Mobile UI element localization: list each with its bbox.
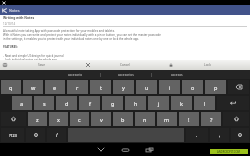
button[interactable]: v [91,112,111,126]
button[interactable]: accesorios [101,70,151,79]
staticText: ANDROIDPIT.COM [217,150,241,154]
staticText: ? [210,116,213,123]
staticText: With it Notes you can write and protect … [3,33,161,37]
staticText: s [43,100,46,107]
staticText: b [121,116,125,123]
button[interactable]: key [231,128,249,142]
button[interactable]: Hide keyboard [89,143,113,156]
staticText: i [169,84,171,91]
staticText: , [219,132,221,138]
staticText: h [134,100,138,107]
staticText: z [36,116,39,123]
button[interactable]: Recent apps [137,143,161,156]
button[interactable]: w [23,80,43,94]
staticText: t [100,84,102,91]
button[interactable]: c [70,112,89,126]
staticText: c [78,116,81,123]
button[interactable]: key [26,128,45,142]
button[interactable]: k [171,96,192,110]
staticText: f [89,100,91,107]
staticText: r [76,84,79,91]
button[interactable]: y [113,80,134,94]
button[interactable]: Cancel [83,60,166,70]
button[interactable]: p [205,80,226,94]
button[interactable]: key [217,96,249,110]
button[interactable]: . [186,128,208,142]
button[interactable]: e [45,80,65,94]
staticText: accesos [171,73,183,77]
staticText: Notes [9,8,20,13]
staticText: accesorio [68,73,83,77]
staticText: k [180,100,183,107]
button[interactable]: d [56,96,77,110]
staticText: A beautiful note taking App with passcod… [3,29,115,33]
staticText: x [57,116,60,123]
button[interactable]: key [1,112,26,126]
button[interactable]: Lock [166,60,249,70]
button[interactable]: / [47,128,66,142]
button[interactable]: o [182,80,203,94]
button[interactable]: i [159,80,180,94]
button[interactable]: Home [113,143,137,156]
staticText: o [191,84,195,91]
button[interactable]: z [28,112,47,126]
button[interactable]: m [157,112,177,126]
staticText: Cancel [120,63,130,67]
button[interactable]: t [90,80,111,94]
staticText: u [145,84,149,91]
button[interactable]: x [49,112,68,126]
staticText: 12/10/14 [3,22,16,26]
staticText: e [53,84,57,91]
button[interactable]: g [102,96,123,110]
staticText: l [204,100,206,107]
staticText: - Lock individual notes or the whole app [3,58,57,60]
button[interactable]: n [135,112,155,126]
button[interactable]: , [210,128,229,142]
staticText: / [56,132,58,138]
staticText: in the settings, it enables you to prote… [3,37,140,41]
staticText: p [214,84,218,91]
staticText: j [158,100,160,107]
staticText: g [111,100,115,107]
staticText: d [65,100,69,107]
staticText: ?123 [9,133,17,138]
button[interactable]: Save [0,60,83,70]
staticText: Lock [204,63,211,67]
staticText: a [20,100,24,107]
button[interactable]: h [125,96,146,110]
staticText: n [143,116,147,123]
button[interactable]: l [194,96,215,110]
staticText: Writing with Notes [3,15,35,19]
button[interactable]: ?123 [1,128,24,142]
button[interactable]: accesorio [50,70,100,79]
button[interactable]: a [12,96,32,110]
button[interactable]: r [67,80,88,94]
staticText: accesorios [118,73,134,77]
button[interactable]: b [113,112,133,126]
button[interactable]: key [228,80,249,94]
button[interactable]: key [223,112,249,126]
button[interactable]: ? [201,112,221,126]
button[interactable]: u [136,80,157,94]
button[interactable]: f [79,96,100,110]
staticText: ! [188,116,190,123]
button[interactable]: accesos [152,70,202,79]
staticText: q [9,84,13,91]
staticText: - Neat and simple UI design for quick jo… [3,54,64,58]
staticText: . [196,132,198,138]
button[interactable]: Notes [0,5,250,15]
button[interactable]: j [148,96,169,110]
staticText: FEATURES: [3,45,18,49]
staticText: v [100,116,103,123]
staticText: w [31,84,36,91]
staticText: Save [38,63,45,67]
staticText: y [122,84,125,91]
staticText: m [164,116,170,123]
button[interactable]: s [34,96,54,110]
button[interactable]: ! [179,112,199,126]
button[interactable]: q [1,80,21,94]
